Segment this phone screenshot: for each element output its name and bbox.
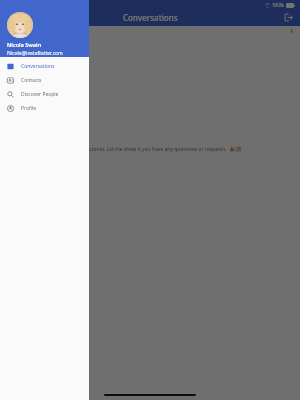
button[interactable]: Conversations bbox=[0, 59, 89, 73]
staticText: A bbox=[290, 28, 294, 35]
staticText: Conversations bbox=[21, 63, 55, 70]
staticText: Nicole Swain bbox=[7, 41, 42, 48]
button[interactable]: Contacts bbox=[0, 73, 89, 87]
staticText: Profile bbox=[21, 105, 37, 112]
staticText: Nicole@instaflutter.com bbox=[7, 50, 63, 57]
button[interactable]: Nicole Swain bbox=[0, 0, 89, 57]
staticText: Discover People bbox=[21, 91, 59, 98]
staticText: Conversations bbox=[123, 12, 178, 23]
button[interactable]: Profile bbox=[0, 101, 89, 115]
button[interactable]: Log out bbox=[281, 10, 295, 24]
button[interactable]: Discover People bbox=[0, 87, 89, 101]
staticText: Contacts bbox=[21, 77, 42, 84]
staticText: 100% bbox=[272, 2, 284, 8]
staticText: example! Thanks for trying out our tutor… bbox=[4, 146, 242, 153]
